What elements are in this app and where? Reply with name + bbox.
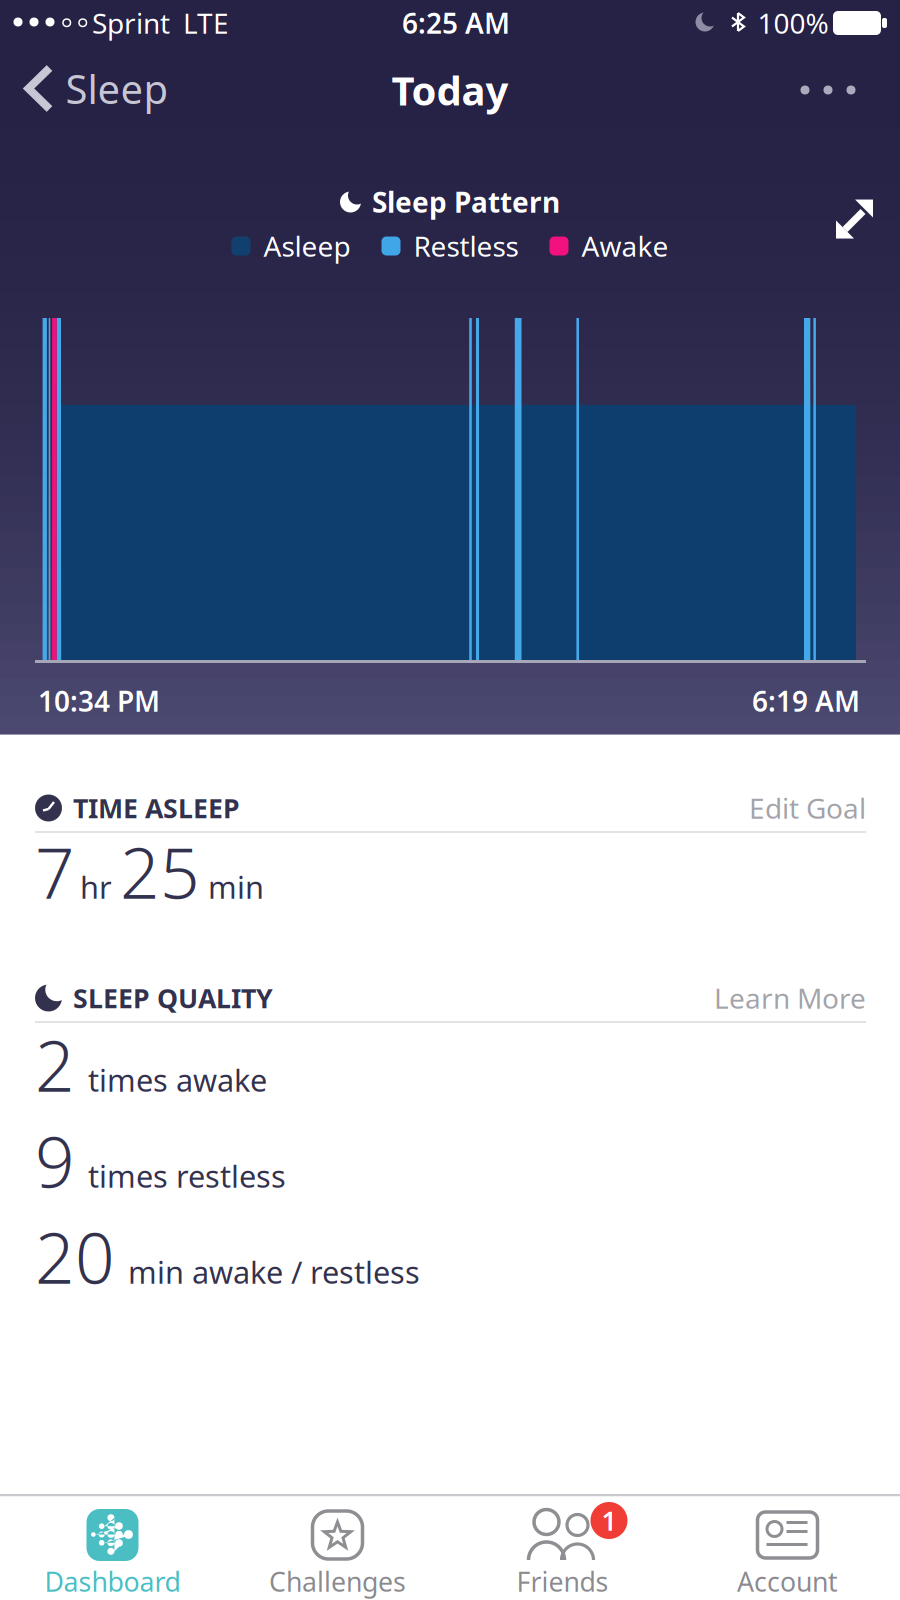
staticText: Friends [516,1564,608,1599]
staticText: Sprint [92,4,170,42]
staticText: times restless [88,1156,286,1196]
staticText: 20 [35,1211,115,1303]
staticText: Sleep Pattern [372,183,560,221]
staticText: min [208,867,264,907]
staticText: 10:34 PM [38,682,160,720]
staticText: Edit Goal [749,789,866,827]
staticText: Awake [581,227,668,265]
staticText: 100% [757,4,828,42]
button[interactable]: Learn More [714,979,866,1017]
staticText: Learn More [714,979,866,1017]
staticText: Today [391,63,508,116]
staticText: Restless [413,227,518,265]
staticText: 6:19 AM [752,682,860,720]
staticText: hr [80,867,112,907]
staticText: 2 [35,1019,75,1111]
staticText: Account [737,1564,838,1599]
button[interactable]: 1 [450,1496,675,1600]
staticText: 25 [120,826,200,918]
staticText: Sleep [65,62,168,115]
staticText: TIME ASLEEP [73,790,240,826]
staticText: 7 [35,826,75,918]
button[interactable]: Edit Goal [749,789,866,827]
staticText: 1 [601,1503,616,1538]
button[interactable]: Dashboard [0,1496,225,1600]
button[interactable]: Expand [836,199,873,238]
staticText: Challenges [269,1564,406,1599]
button[interactable]: Account [675,1496,900,1600]
staticText: 9 [35,1115,75,1207]
staticText: LTE [183,4,229,42]
staticText: times awake [88,1060,267,1100]
staticText: min awake / restless [128,1252,420,1292]
staticText: 6:25 AM [402,4,510,42]
button[interactable]: Sleep [25,62,168,115]
staticText: Dashboard [44,1564,180,1599]
button[interactable]: Challenges [225,1496,450,1600]
staticText: SLEEP QUALITY [73,980,273,1016]
button[interactable]: More [800,85,856,95]
staticText: Asleep [263,227,350,265]
